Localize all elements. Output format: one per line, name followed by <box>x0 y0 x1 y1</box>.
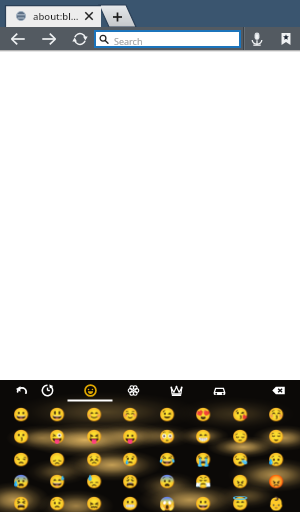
button[interactable]: Recent <box>37 380 57 400</box>
staticText: 😜 <box>49 429 66 444</box>
staticText: 😫 <box>13 496 30 511</box>
button[interactable]: 😪 <box>222 448 259 470</box>
staticText: 😤 <box>195 474 212 489</box>
button[interactable]: 😠 <box>222 470 259 492</box>
staticText: 😀 <box>13 407 30 422</box>
staticText: 😳 <box>159 429 176 444</box>
staticText: 😂 <box>159 452 176 467</box>
button[interactable]: Nature <box>123 380 143 400</box>
staticText: 😬 <box>122 496 139 511</box>
staticText: 😟 <box>49 496 66 511</box>
button[interactable]: 😜 <box>39 425 76 447</box>
button[interactable]: about:bl… <box>5 5 101 27</box>
button[interactable]: 😱 <box>149 492 186 512</box>
button[interactable]: 😃 <box>39 403 76 425</box>
staticText: 😪 <box>232 452 249 467</box>
button[interactable]: Back <box>6 27 29 50</box>
staticText: 😚 <box>268 407 285 422</box>
button[interactable]: 😇 <box>222 492 259 512</box>
button[interactable]: 😟 <box>39 492 76 512</box>
staticText: 😅 <box>49 474 66 489</box>
staticText: 😌 <box>268 429 285 444</box>
button[interactable]: 😣 <box>76 448 113 470</box>
button[interactable]: 😞 <box>39 448 76 470</box>
button[interactable]: 👶 <box>258 492 295 512</box>
button[interactable]: 😉 <box>149 403 186 425</box>
button[interactable]: 😥 <box>258 448 295 470</box>
staticText: 😰 <box>13 474 30 489</box>
staticText: 😉 <box>159 407 176 422</box>
button[interactable]: Objects <box>166 380 186 400</box>
staticText: Search <box>114 35 143 47</box>
button[interactable]: 😍 <box>185 403 222 425</box>
staticText: 😔 <box>232 429 249 444</box>
button[interactable]: 😡 <box>258 470 295 492</box>
staticText: 😢 <box>122 452 139 467</box>
staticText: 😡 <box>268 474 285 489</box>
button[interactable]: 😬 <box>112 492 149 512</box>
button[interactable]: Forward <box>37 27 60 50</box>
staticText: 😛 <box>122 429 139 444</box>
button[interactable]: 😓 <box>76 470 113 492</box>
button[interactable]: ☺️ <box>112 403 149 425</box>
button[interactable]: 😀 <box>185 492 222 512</box>
button[interactable]: Search <box>96 32 239 46</box>
staticText: 😱 <box>159 496 176 511</box>
button[interactable]: 😂 <box>149 448 186 470</box>
staticText: 😣 <box>86 452 103 467</box>
staticText: 😊 <box>86 407 103 422</box>
staticText: 😍 <box>195 407 212 422</box>
staticText: 😀 <box>195 496 212 511</box>
staticText: 😭 <box>195 452 212 467</box>
button[interactable]: 😚 <box>258 403 295 425</box>
staticText: about:bl… <box>33 10 79 23</box>
staticText: 👶 <box>268 496 285 511</box>
button[interactable]: 😀 <box>3 403 40 425</box>
staticText: 😓 <box>86 474 103 489</box>
button[interactable]: 😛 <box>112 425 149 447</box>
button[interactable]: 😫 <box>3 492 40 512</box>
button[interactable]: 😳 <box>149 425 186 447</box>
button[interactable]: 😌 <box>258 425 295 447</box>
button[interactable]: New tab <box>0 0 300 27</box>
staticText: 😥 <box>268 452 285 467</box>
staticText: 😖 <box>86 496 103 511</box>
button[interactable]: Undo <box>11 380 31 400</box>
staticText: 😨 <box>159 474 176 489</box>
button[interactable]: 😊 <box>76 403 113 425</box>
staticText: 😝 <box>86 429 103 444</box>
staticText: 😩 <box>122 474 139 489</box>
button[interactable]: 😩 <box>112 470 149 492</box>
button[interactable]: 😨 <box>149 470 186 492</box>
button[interactable]: 😁 <box>185 425 222 447</box>
button[interactable]: Backspace <box>268 380 288 400</box>
button[interactable]: 😒 <box>3 448 40 470</box>
button[interactable]: Voice search <box>245 27 268 50</box>
button[interactable]: 😤 <box>185 470 222 492</box>
button[interactable]: 😅 <box>39 470 76 492</box>
button[interactable]: Travel <box>209 380 229 400</box>
staticText: 😒 <box>13 452 30 467</box>
button[interactable]: Bookmarks <box>274 27 297 50</box>
staticText: 😃 <box>49 407 66 422</box>
staticText: 😘 <box>232 407 249 422</box>
button[interactable]: 😗 <box>3 425 40 447</box>
staticText: 😇 <box>232 496 249 511</box>
button[interactable]: Close tab <box>83 10 95 22</box>
staticText: 😗 <box>13 429 30 444</box>
button[interactable]: 😭 <box>185 448 222 470</box>
button[interactable]: 😖 <box>76 492 113 512</box>
button[interactable]: 😰 <box>3 470 40 492</box>
button[interactable]: 😘 <box>222 403 259 425</box>
button[interactable]: 😢 <box>112 448 149 470</box>
staticText: 😞 <box>49 452 66 467</box>
staticText: ☺️ <box>122 407 139 422</box>
button[interactable]: Smileys <box>80 380 100 400</box>
button[interactable]: Reload <box>68 27 91 50</box>
staticText: 😁 <box>195 429 212 444</box>
staticText: 😠 <box>232 474 249 489</box>
button[interactable]: 😔 <box>222 425 259 447</box>
button[interactable]: 😝 <box>76 425 113 447</box>
